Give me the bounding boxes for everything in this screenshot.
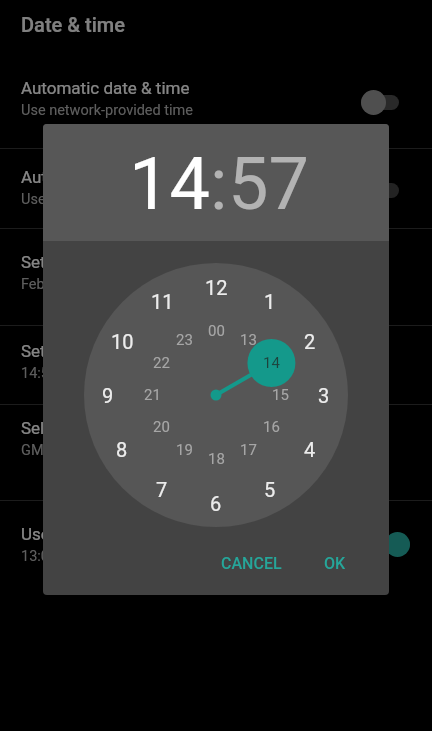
button[interactable]: OK — [303, 539, 367, 587]
staticText: 12 — [205, 276, 228, 299]
staticText: 6 — [210, 492, 222, 515]
staticText: Use network-provided time zone — [21, 191, 228, 208]
staticText: OK — [324, 554, 346, 573]
button[interactable] — [0, 322, 432, 402]
staticText: 16 — [263, 418, 280, 436]
staticText: 14:57 — [21, 365, 58, 382]
staticText: 19 — [176, 441, 193, 459]
staticText: 57 — [228, 142, 309, 226]
staticText: 14 — [129, 142, 210, 226]
staticText: 3 — [318, 384, 330, 407]
staticText: CANCEL — [221, 554, 282, 573]
button[interactable] — [0, 59, 432, 139]
staticText: 23 — [176, 331, 193, 349]
staticText: 00 — [208, 322, 225, 340]
staticText: Use 24-hour format — [21, 524, 168, 544]
staticText: Select time zone — [21, 418, 147, 438]
button[interactable] — [0, 148, 432, 228]
staticText: 21 — [144, 386, 161, 404]
staticText: GMT+02:00 Eastern European Standard Time — [21, 442, 312, 459]
staticText: 15 — [272, 386, 289, 404]
staticText: 9 — [102, 384, 114, 407]
staticText: 20 — [153, 418, 170, 436]
staticText: 1 — [264, 290, 276, 313]
button[interactable] — [0, 399, 432, 479]
button[interactable] — [0, 505, 432, 585]
staticText: 13 — [240, 331, 257, 349]
staticText: Automatic date & time — [21, 78, 190, 98]
staticText: 18 — [208, 450, 225, 468]
staticText: Set date — [21, 252, 84, 272]
staticText: Set time — [21, 341, 84, 361]
staticText: 7 — [156, 478, 168, 501]
staticText: Use network-provided time — [21, 102, 193, 119]
staticText: Automatic time zone — [21, 167, 178, 187]
staticText: 11 — [151, 290, 174, 313]
button[interactable]: CANCEL — [199, 539, 303, 587]
staticText: 5 — [264, 478, 276, 501]
staticText: : — [210, 142, 228, 226]
staticText: 4 — [304, 438, 316, 461]
staticText: 14 — [263, 354, 280, 372]
staticText: February 4, 2023 — [21, 276, 129, 293]
button[interactable] — [0, 233, 432, 313]
staticText: 10 — [111, 330, 134, 353]
staticText: 17 — [240, 441, 257, 459]
staticText: 22 — [153, 354, 170, 372]
staticText: Date & time — [21, 13, 125, 36]
staticText: 2 — [304, 330, 316, 353]
staticText: 13:00 — [21, 548, 58, 565]
staticText: 8 — [116, 438, 128, 461]
